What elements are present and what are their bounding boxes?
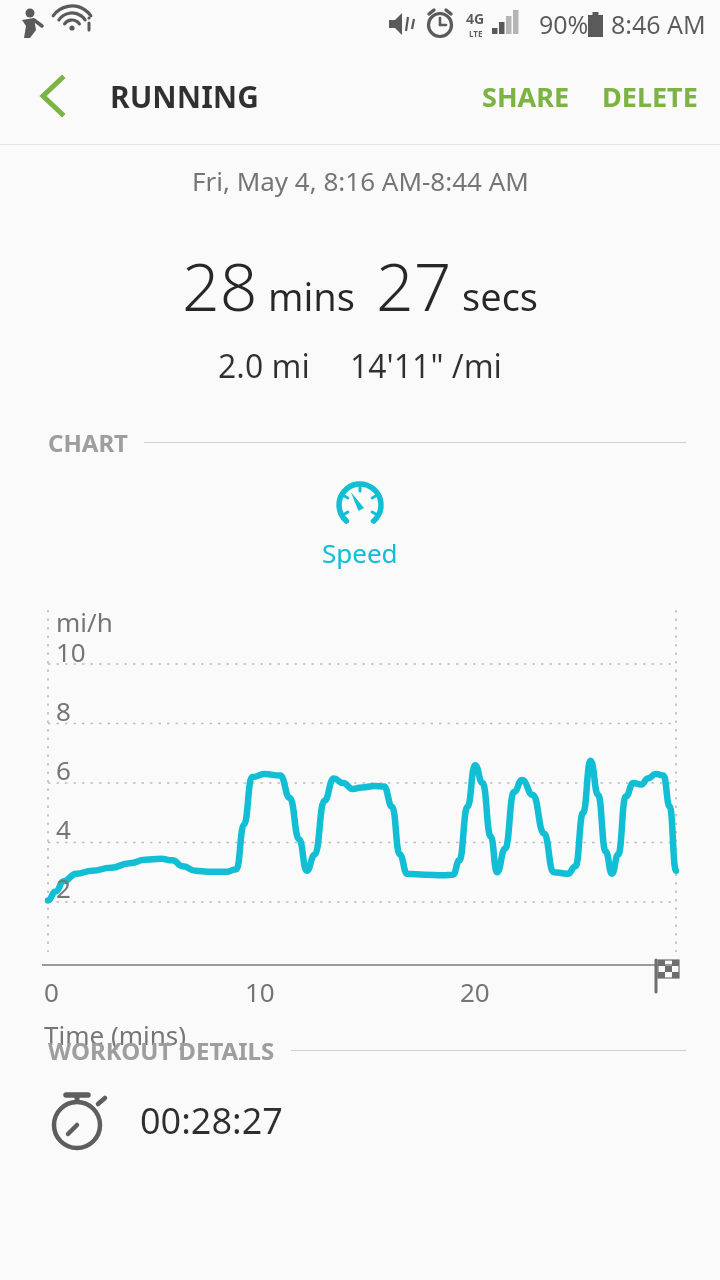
- staticText: DELETE: [602, 78, 698, 115]
- staticText: Speed: [322, 535, 398, 570]
- button[interactable]: DELETE: [586, 64, 720, 129]
- staticText: 10: [245, 974, 275, 1009]
- staticText: 00:28:27: [140, 1096, 283, 1145]
- staticText: mins: [268, 270, 356, 322]
- staticText: 2: [56, 870, 71, 905]
- staticText: LTE: [469, 28, 483, 39]
- button[interactable]: 00:28:27: [0, 1085, 720, 1159]
- staticText: RUNNING: [110, 76, 259, 117]
- button[interactable]: SHARE: [466, 64, 586, 129]
- staticText: 0: [44, 974, 59, 1009]
- staticText: 8: [56, 693, 71, 728]
- staticText: Fri, May 4, 8:16 AM-8:44 AM: [192, 163, 529, 198]
- staticText: WORKOUT DETAILS: [48, 1034, 275, 1067]
- staticText: 20: [460, 974, 490, 1009]
- staticText: CHART: [48, 426, 128, 459]
- staticText: 6: [56, 752, 71, 787]
- staticText: 10: [56, 634, 86, 669]
- staticText: Time (mins): [44, 1017, 187, 1052]
- button[interactable]: Speed chart: [334, 477, 386, 529]
- staticText: 14'11" /mi: [350, 344, 502, 388]
- staticText: 2.0 mi: [218, 344, 310, 388]
- staticText: 28: [182, 240, 258, 330]
- staticText: SHARE: [482, 78, 570, 115]
- staticText: 90%: [539, 7, 589, 41]
- staticText: secs: [462, 270, 539, 322]
- staticText: 8:46 AM: [611, 7, 706, 41]
- staticText: 27: [376, 240, 452, 330]
- button[interactable]: Back: [20, 64, 84, 128]
- staticText: mi/h: [56, 604, 113, 639]
- staticText: 4G: [466, 9, 485, 28]
- staticText: 4: [56, 811, 71, 846]
